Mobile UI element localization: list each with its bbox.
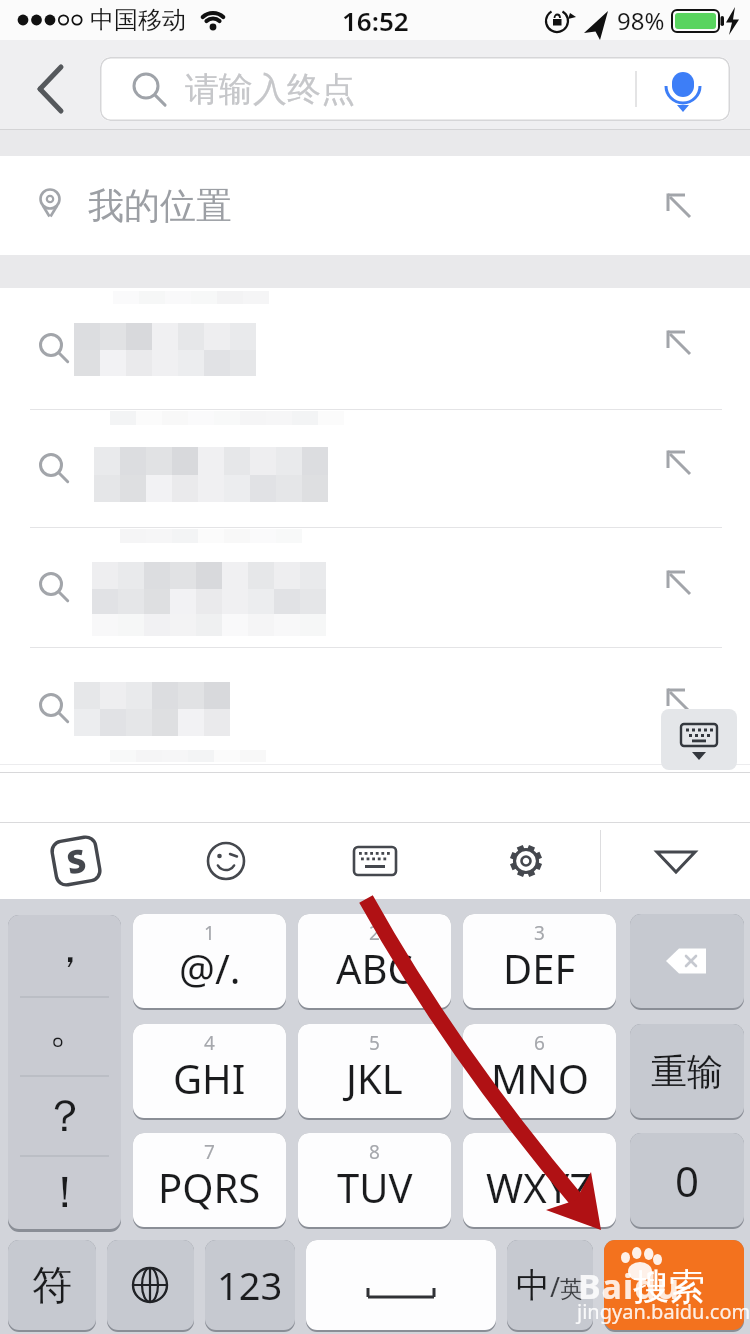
staticText: ？ (43, 1089, 87, 1144)
staticText: 1 (204, 920, 215, 946)
button[interactable] (661, 709, 737, 770)
staticText: 4 (204, 1030, 215, 1056)
staticText: 3 (534, 920, 545, 946)
button[interactable] (0, 288, 750, 409)
staticText: 我的位置 (88, 183, 232, 228)
button[interactable]: 8 (298, 1133, 451, 1227)
staticText: MNO (491, 1051, 589, 1105)
button[interactable]: 9 (463, 1133, 616, 1227)
button[interactable]: 2 (298, 914, 451, 1008)
staticText: 6 (534, 1030, 545, 1056)
staticText: ABC (336, 941, 413, 995)
button[interactable] (8, 915, 121, 1229)
button[interactable]: 搜索 (604, 1240, 744, 1330)
staticText: ！ (43, 1165, 87, 1220)
button[interactable]: 中/英 (507, 1240, 593, 1330)
button[interactable] (0, 647, 750, 769)
staticText: ， (49, 922, 91, 975)
button[interactable] (306, 1240, 496, 1330)
staticText: Baidu (578, 1263, 680, 1309)
staticText: 2 (369, 920, 380, 946)
button[interactable]: S (48, 833, 104, 889)
staticText: 重输 (651, 1049, 723, 1094)
staticText: 8 (369, 1139, 380, 1165)
staticText: 请输入终点 (185, 68, 355, 111)
button[interactable]: 5 (298, 1024, 451, 1118)
button[interactable] (0, 409, 750, 527)
staticText: DEF (503, 941, 576, 995)
button[interactable] (107, 1240, 194, 1330)
button[interactable]: 4 (133, 1024, 286, 1118)
button[interactable]: 0 (630, 1133, 744, 1227)
button[interactable] (24, 58, 80, 120)
staticText: S (63, 838, 90, 884)
button[interactable] (0, 527, 750, 647)
staticText: JKL (346, 1051, 403, 1105)
button[interactable] (630, 914, 744, 1008)
staticText: GHI (173, 1051, 246, 1105)
staticText: 123 (217, 1259, 283, 1311)
staticText: 符 (32, 1260, 72, 1310)
staticText: 中/英 (516, 1264, 584, 1307)
staticText: 7 (204, 1139, 215, 1165)
staticText: TUV (337, 1160, 413, 1214)
button[interactable] (0, 156, 750, 255)
staticText: jingyan.baidu.com (577, 1298, 750, 1325)
staticText: 5 (369, 1030, 380, 1056)
button[interactable] (100, 57, 730, 121)
staticText: 9 (534, 1139, 545, 1165)
staticText: PQRS (158, 1160, 261, 1214)
staticText: 中国移动 (90, 5, 186, 35)
staticText: WXYZ (486, 1160, 593, 1214)
button[interactable]: 6 (463, 1024, 616, 1118)
button[interactable]: 1 (133, 914, 286, 1008)
staticText: 。 (49, 1002, 91, 1055)
button[interactable]: 重输 (630, 1024, 744, 1118)
staticText: 0 (675, 1152, 700, 1209)
button[interactable]: 符 (8, 1240, 96, 1330)
staticText: @/. (179, 941, 241, 995)
button[interactable]: 7 (133, 1133, 286, 1227)
button[interactable]: 123 (205, 1240, 295, 1330)
staticText: 98% (617, 4, 665, 37)
staticText: 16:52 (342, 3, 409, 38)
button[interactable]: 3 (463, 914, 616, 1008)
staticText: 搜索 (633, 1264, 705, 1309)
